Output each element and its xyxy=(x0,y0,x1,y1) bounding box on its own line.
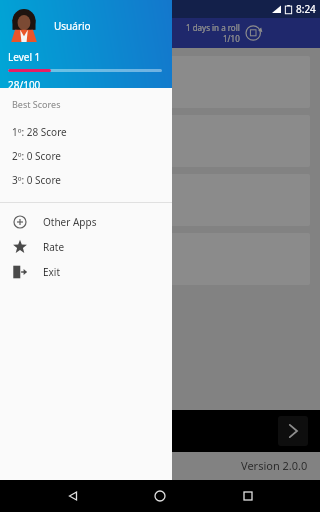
button[interactable]: Home xyxy=(145,481,175,511)
staticText: 3º: 0 Score xyxy=(12,173,61,187)
button[interactable]: Multip. Tables xyxy=(10,115,310,167)
staticText: 1 days in a roll xyxy=(186,22,240,33)
button[interactable]: Tables xyxy=(10,174,310,226)
button[interactable]: Rate xyxy=(0,234,172,259)
staticText: Version 2.0.0 xyxy=(241,458,308,473)
button[interactable]: Daily streak xyxy=(244,23,264,43)
staticText: 2º: 0 Score xyxy=(12,149,61,163)
button[interactable]: Other Apps xyxy=(0,209,172,234)
staticText: Level 1 xyxy=(8,50,41,64)
staticText: 28/100 xyxy=(8,78,41,88)
button[interactable]: 3º: 0 Score xyxy=(0,168,172,192)
staticText: 8:24 xyxy=(296,2,316,16)
staticText: Rate xyxy=(43,240,65,254)
staticText: Other Apps xyxy=(43,215,97,229)
staticText: General Knowledge xyxy=(22,73,142,91)
staticText: Exit xyxy=(43,265,61,279)
staticText: 1/10 xyxy=(223,33,240,44)
button[interactable] xyxy=(10,233,310,285)
staticText: 1º: 28 Score xyxy=(12,125,67,139)
staticText: Usuário xyxy=(54,19,91,33)
staticText: Multip. Tables xyxy=(22,132,107,150)
button[interactable]: Exit xyxy=(0,259,172,284)
button[interactable]: General Knowledge xyxy=(10,56,310,108)
button[interactable]: 1º: 28 Score xyxy=(0,120,172,144)
staticText: Tables xyxy=(22,191,61,209)
button[interactable]: Next xyxy=(278,416,308,446)
button[interactable]: 2º: 0 Score xyxy=(0,144,172,168)
button[interactable]: Recents xyxy=(233,481,263,511)
button[interactable]: Back xyxy=(58,481,88,511)
staticText: Best Scores xyxy=(12,98,61,110)
